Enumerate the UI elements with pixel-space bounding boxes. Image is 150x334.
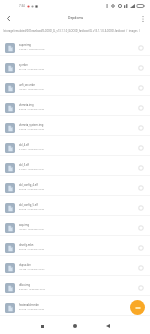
staticText: featenabler.mbn [19, 303, 39, 307]
staticText: super.img [19, 43, 31, 47]
staticText: 3.4 MB | 12-06-2021 07:32 [19, 168, 44, 171]
staticText: xbl_config_5.elf [19, 203, 38, 207]
button[interactable]: Select [137, 224, 145, 232]
button[interactable]: Select [137, 284, 145, 292]
staticText: 52.4 KB | 12-06-2021 07:32 [19, 308, 45, 311]
button[interactable]: Select [137, 104, 145, 112]
button[interactable]: super.img [0, 36, 150, 56]
button[interactable]: Select [137, 204, 145, 212]
button[interactable]: Select [137, 244, 145, 252]
button[interactable]: xbl_4.elf [0, 136, 150, 156]
staticText: 4.00 KB | 12-06-2021 07:32 [19, 128, 45, 131]
button[interactable]: vbmeta_system.img [0, 116, 150, 136]
button[interactable]: uefi_sec.mbn [0, 76, 150, 96]
staticText: /storage/emulated/0/Download/ILOCKD_IL_v… [3, 29, 140, 33]
button[interactable]: featenabler.mbn [0, 296, 150, 316]
staticText: 193 KB | 12-06-2021 07:32 [19, 88, 44, 91]
button[interactable]: Select [137, 264, 145, 272]
button[interactable]: xbl_config_4.elf [0, 176, 150, 196]
staticText: sy.mbn [19, 63, 28, 67]
staticText: vbmeta_system.img [19, 123, 44, 127]
button[interactable]: Paste [130, 300, 145, 315]
staticText: 55.1 KB | 12-06-2021 07:32 [19, 68, 45, 71]
staticText: 99.5 KB | 12-06-2021 07:32 [19, 188, 45, 191]
button[interactable]: Home [66, 318, 83, 334]
button[interactable]: aop.img [0, 216, 150, 236]
staticText: 8.00 KB | 12-06-2021 07:32 [19, 108, 45, 111]
button[interactable]: Select [137, 84, 145, 92]
staticText: 99.5 KB | 12-06-2021 07:32 [19, 208, 45, 211]
staticText: xbl_4.elf [19, 143, 29, 147]
staticText: vbmeta.img [19, 103, 34, 107]
staticText: dtbo.img [19, 283, 31, 287]
staticText: 60.0 KB | 12-06-2021 07:32 [19, 248, 45, 251]
staticText: uefi_sec.mbn [19, 83, 36, 87]
button[interactable]: sy.mbn [0, 56, 150, 76]
button[interactable]: Select [137, 64, 145, 72]
button[interactable]: Select [137, 184, 145, 192]
staticText: 388 KB | 12-06-2021 07:32 [19, 327, 44, 330]
button[interactable]: Select [137, 304, 145, 312]
button[interactable]: Select [137, 124, 145, 132]
staticText: Depdoms [68, 15, 84, 19]
button[interactable]: Recents [34, 318, 51, 334]
staticText: xbl_config_4.elf [19, 183, 38, 187]
staticText: devcfg.mbn [19, 243, 34, 247]
staticText: xbl_5.elf [19, 163, 29, 167]
staticText: dspso.bin [19, 263, 31, 267]
staticText: aop.img [19, 223, 30, 227]
button[interactable]: Back [0, 11, 16, 26]
button[interactable]: Back [99, 318, 116, 334]
button[interactable]: hyp.mbn [0, 316, 150, 334]
button[interactable]: vbmeta.img [0, 96, 150, 116]
button[interactable]: dspso.bin [0, 256, 150, 276]
staticText: 7:34 [19, 4, 25, 8]
button[interactable]: Select [137, 164, 145, 172]
staticText: 184 KB | 12-06-2021 07:32 [19, 228, 44, 231]
button[interactable]: devcfg.mbn [0, 236, 150, 256]
staticText: 3.4 MB | 12-06-2021 07:32 [19, 148, 44, 151]
button[interactable]: Select [137, 44, 145, 52]
button[interactable]: Select [137, 144, 145, 152]
button[interactable]: xbl_5.elf [0, 156, 150, 176]
button[interactable]: More options [135, 11, 150, 26]
button[interactable]: xbl_config_5.elf [0, 196, 150, 216]
staticText: 7.00 GB | 12-06-2021 07:32 [19, 48, 45, 51]
staticText: 107 MB | 12-06-2021 07:32 [19, 268, 45, 271]
button[interactable]: dtbo.img [0, 276, 150, 296]
staticText: 8.00 MB | 12-06-2021 07:32 [19, 288, 45, 291]
